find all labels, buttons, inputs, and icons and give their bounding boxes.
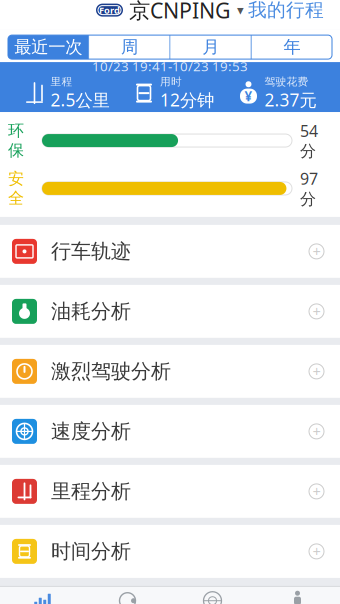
staticText: 里程分析: [51, 479, 131, 504]
staticText: 安全: [8, 169, 24, 208]
staticText: 驾驶花费: [264, 75, 308, 88]
staticText: Ford: [99, 4, 120, 16]
staticText: 月: [202, 36, 219, 58]
button[interactable]: 时间分析: [0, 525, 340, 578]
staticText: +: [312, 242, 320, 261]
button[interactable]: 油耗分析: [0, 285, 340, 338]
button[interactable]: 年: [252, 35, 332, 59]
button[interactable]: 最近一次: [8, 35, 88, 59]
button[interactable]: 周: [89, 35, 169, 59]
staticText: 行车轨迹: [51, 239, 131, 264]
button[interactable]: 激烈驾驶分析: [0, 345, 340, 398]
staticText: 2.37元: [264, 88, 316, 111]
staticText: 周: [121, 36, 138, 58]
staticText: ▾: [237, 2, 244, 18]
staticText: 2.5公里: [50, 88, 109, 111]
staticText: 我的行程: [248, 0, 324, 21]
staticText: 97分: [300, 168, 318, 209]
staticText: +: [312, 302, 320, 321]
button[interactable]: 里程分析: [0, 465, 340, 518]
button[interactable]: 我的行程: [238, 0, 334, 29]
staticText: 里程: [50, 75, 72, 88]
button[interactable]: 驾驶数据: [0, 587, 85, 604]
button[interactable]: 月: [170, 35, 251, 59]
staticText: 环保: [8, 121, 24, 160]
staticText: 用时: [160, 75, 182, 88]
button[interactable]: 速度分析: [0, 405, 340, 458]
button[interactable]: 我: [255, 587, 340, 604]
staticText: +: [312, 362, 320, 381]
staticText: +: [312, 542, 320, 561]
staticText: 速度分析: [51, 419, 131, 444]
staticText: 54分: [300, 120, 318, 161]
staticText: 12分钟: [160, 88, 214, 111]
button[interactable]: Ford: [96, 0, 244, 24]
staticText: 激烈驾驶分析: [51, 359, 171, 384]
staticText: 10/23 19:41-10/23 19:53: [92, 57, 248, 75]
staticText: 最近一次: [14, 36, 82, 58]
staticText: +: [312, 422, 320, 441]
button[interactable]: 行车轨迹: [0, 225, 340, 278]
staticText: 年: [283, 36, 300, 58]
button[interactable]: 车生活: [170, 587, 255, 604]
staticText: 时间分析: [51, 539, 131, 564]
staticText: 油耗分析: [51, 299, 131, 324]
staticText: +: [312, 482, 320, 501]
staticText: ¥: [244, 87, 252, 105]
button[interactable]: 车辆健康: [85, 587, 170, 604]
staticText: 京CNPING: [129, 0, 231, 24]
